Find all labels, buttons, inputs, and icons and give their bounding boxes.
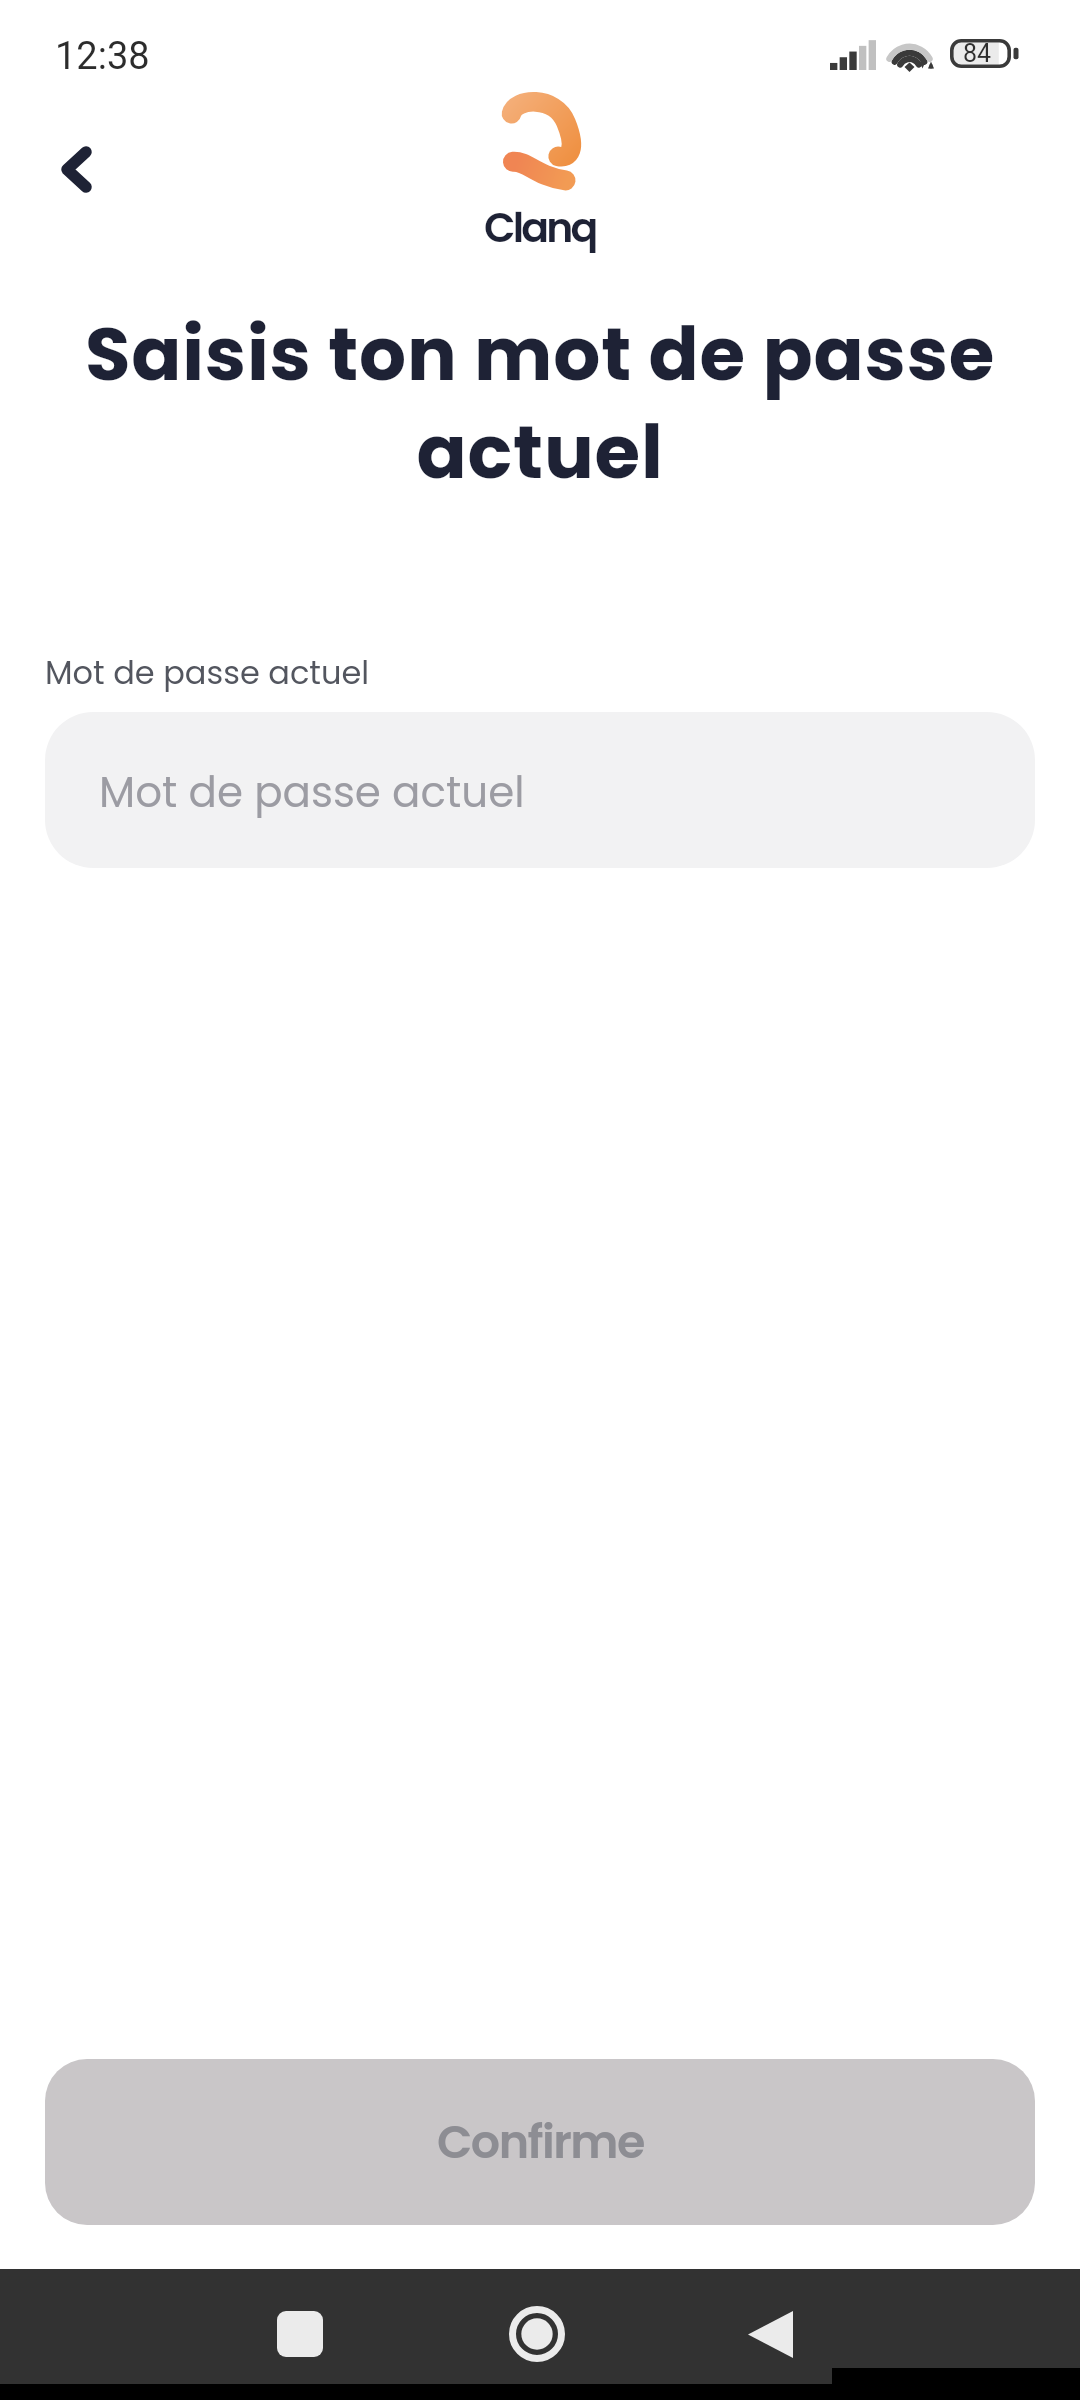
staticText: Confirme (437, 2110, 644, 2174)
staticText: 84 (963, 39, 992, 68)
button[interactable]: Back (710, 2296, 830, 2372)
staticText: Mot de passe actuel (45, 650, 370, 695)
button[interactable]: Home (477, 2296, 597, 2372)
staticText: Saisis ton mot de passe actuel (40, 302, 1040, 504)
button[interactable]: Recent apps (240, 2296, 360, 2372)
button[interactable]: Confirme (45, 2059, 1035, 2225)
button[interactable]: Back (16, 109, 136, 229)
staticText: Clanq (484, 199, 596, 256)
staticText: Mot de passe actuel (99, 763, 525, 822)
button[interactable]: Mot de passe actuel (45, 712, 1035, 868)
staticText: 12:38 (55, 34, 150, 79)
